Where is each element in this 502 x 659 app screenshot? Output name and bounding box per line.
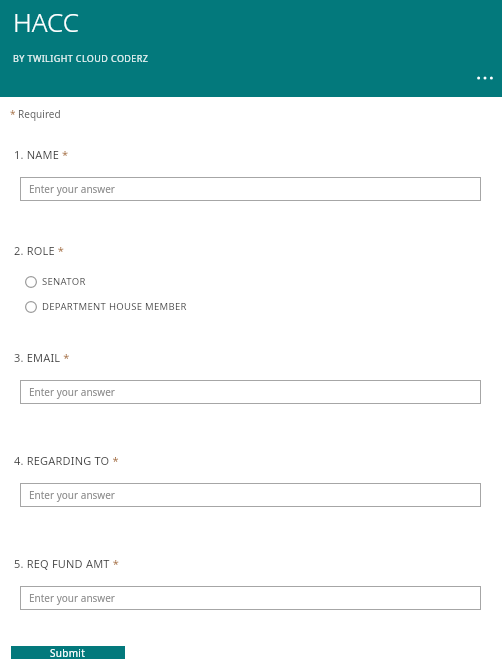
staticText: Enter your answer xyxy=(29,591,115,605)
button[interactable]: More options xyxy=(471,64,499,92)
button[interactable]: Submit xyxy=(11,646,125,659)
staticText: HACC xyxy=(13,4,79,39)
staticText: 3. EMAIL * xyxy=(14,350,70,365)
staticText: 4. REGARDING TO * xyxy=(14,453,119,468)
staticText: Enter your answer xyxy=(29,385,115,399)
staticText: Enter your answer xyxy=(29,182,115,196)
button[interactable]: Enter your answer xyxy=(20,483,481,507)
staticText: 2. ROLE * xyxy=(14,243,65,258)
staticText: 1. NAME * xyxy=(14,147,69,162)
button[interactable]: DEPARTMENT HOUSE MEMBER xyxy=(0,294,502,319)
button[interactable]: Enter your answer xyxy=(20,380,481,404)
staticText: Submit xyxy=(50,646,86,659)
staticText: Enter your answer xyxy=(29,488,115,502)
button[interactable]: Enter your answer xyxy=(20,177,481,201)
staticText: 5. REQ FUND AMT * xyxy=(14,556,119,571)
button[interactable]: SENATOR xyxy=(0,269,502,294)
staticText: BY TWILIGHT CLOUD CODERZ xyxy=(13,52,149,64)
staticText: SENATOR xyxy=(42,275,86,288)
button[interactable]: Enter your answer xyxy=(20,586,481,610)
staticText: * Required xyxy=(10,107,61,121)
staticText: DEPARTMENT HOUSE MEMBER xyxy=(42,300,187,313)
